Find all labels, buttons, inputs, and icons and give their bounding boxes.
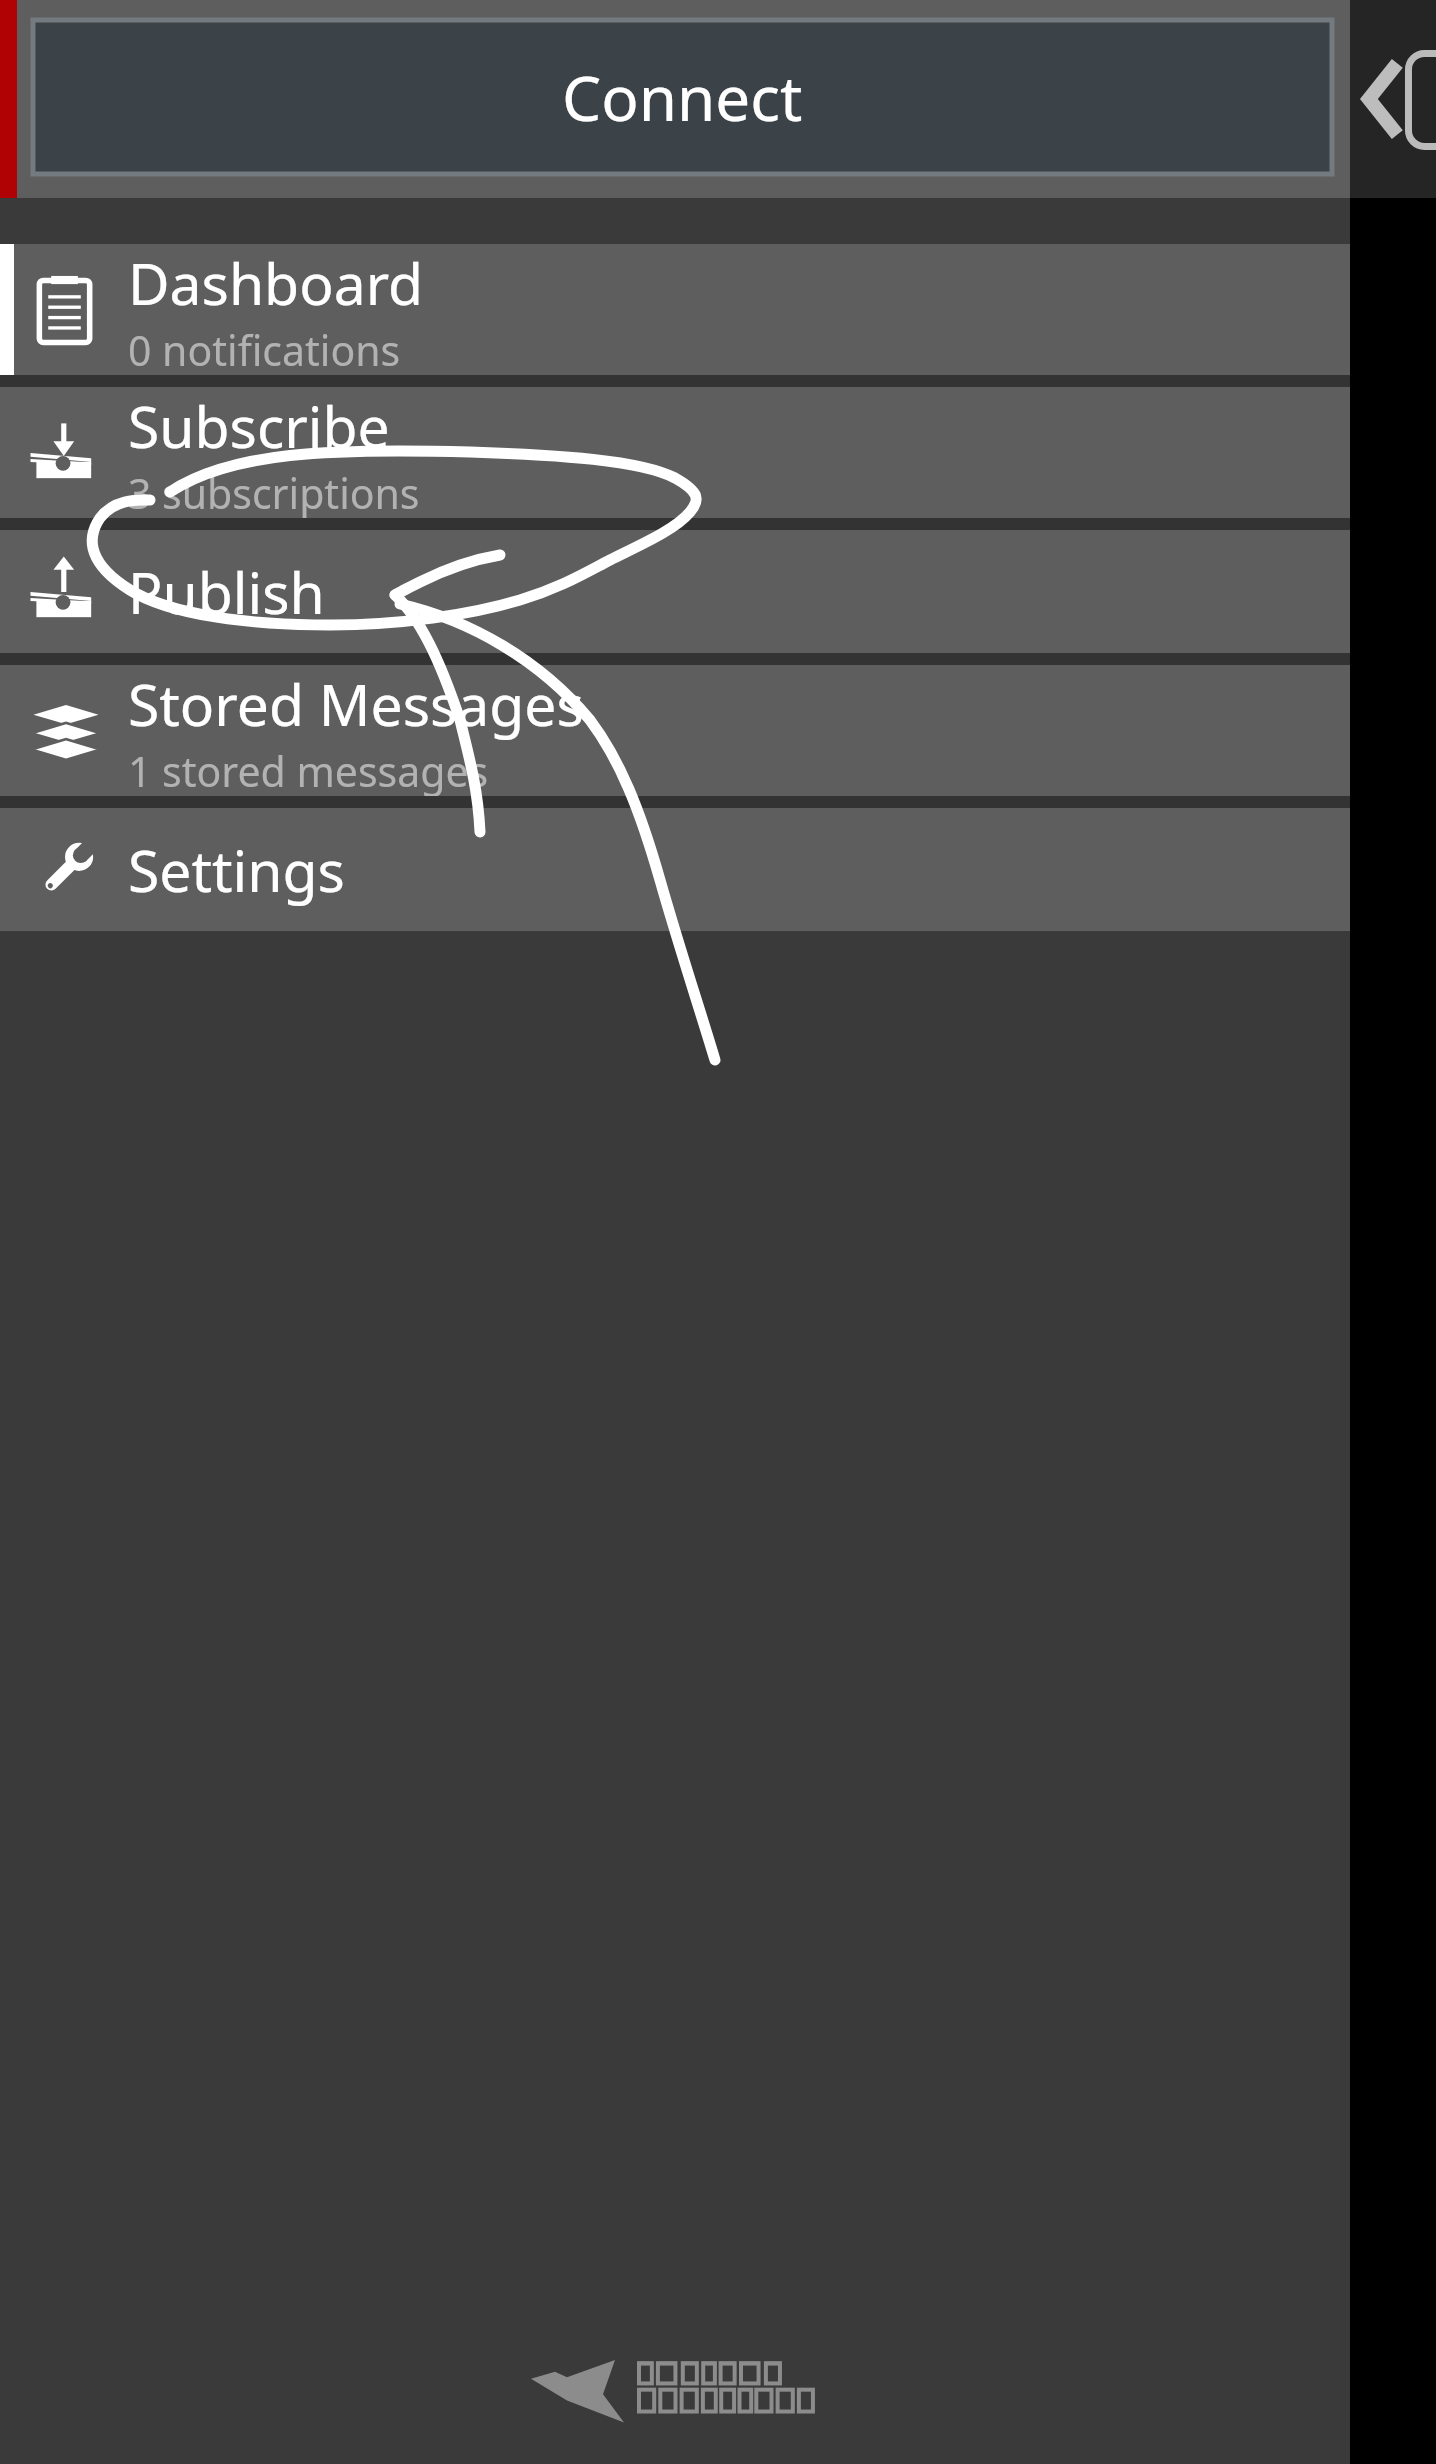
staticText: Publish xyxy=(128,553,325,631)
staticText: Dashboard xyxy=(128,244,424,322)
staticText: Subscribe xyxy=(128,387,390,465)
button[interactable]: Settings xyxy=(0,808,1350,931)
button[interactable]: Publish xyxy=(0,530,1350,653)
staticText: 1 stored messages xyxy=(128,743,489,796)
button[interactable]: Subscribe xyxy=(0,387,1350,518)
button[interactable]: Connect xyxy=(33,20,1332,174)
staticText: 3 subscriptions xyxy=(128,465,420,518)
button[interactable]: Stored Messages xyxy=(0,665,1350,796)
staticText: Stored Messages xyxy=(128,665,584,743)
button[interactable]: Back xyxy=(1350,0,1436,198)
staticText: Connect xyxy=(562,55,803,139)
staticText: Settings xyxy=(128,831,345,909)
staticText: 0 notifications xyxy=(128,322,401,375)
button[interactable]: Dashboard xyxy=(0,244,1350,375)
